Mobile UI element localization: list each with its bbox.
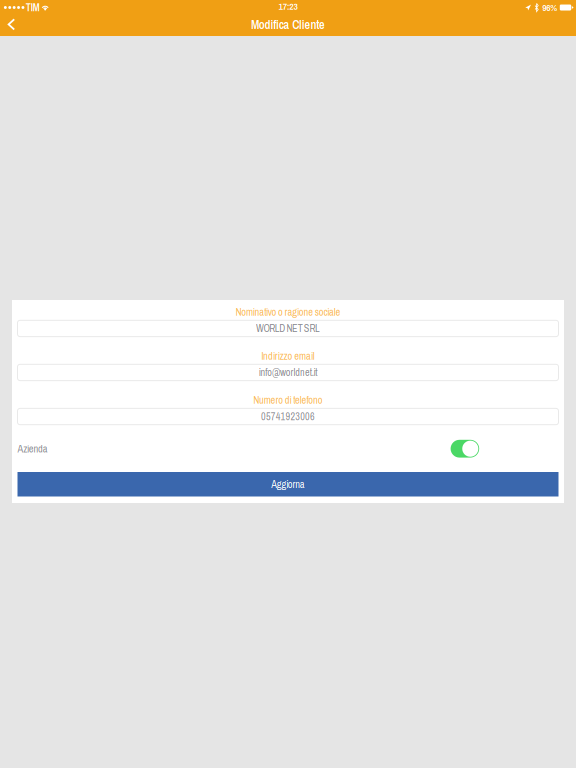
staticText: 05741923006 <box>261 410 315 423</box>
button[interactable]: Aggiorna <box>17 472 558 496</box>
staticText: info@worldnet.it <box>259 366 317 379</box>
staticText: Numero di telefono <box>253 393 323 407</box>
button[interactable]: Azienda <box>451 440 479 458</box>
staticText: Aggiorna <box>271 477 305 491</box>
staticText: Nominativo o ragione sociale <box>235 305 341 319</box>
staticText: Azienda <box>17 442 48 456</box>
staticText: WORLD NET SRL <box>256 322 320 335</box>
staticText: Modifica Cliente <box>251 16 325 33</box>
staticText: TIM <box>26 1 40 14</box>
staticText: Indirizzo email <box>261 349 315 363</box>
staticText: 96% <box>542 1 557 14</box>
staticText: 17:23 <box>278 0 298 13</box>
button[interactable]: Back <box>0 15 22 36</box>
